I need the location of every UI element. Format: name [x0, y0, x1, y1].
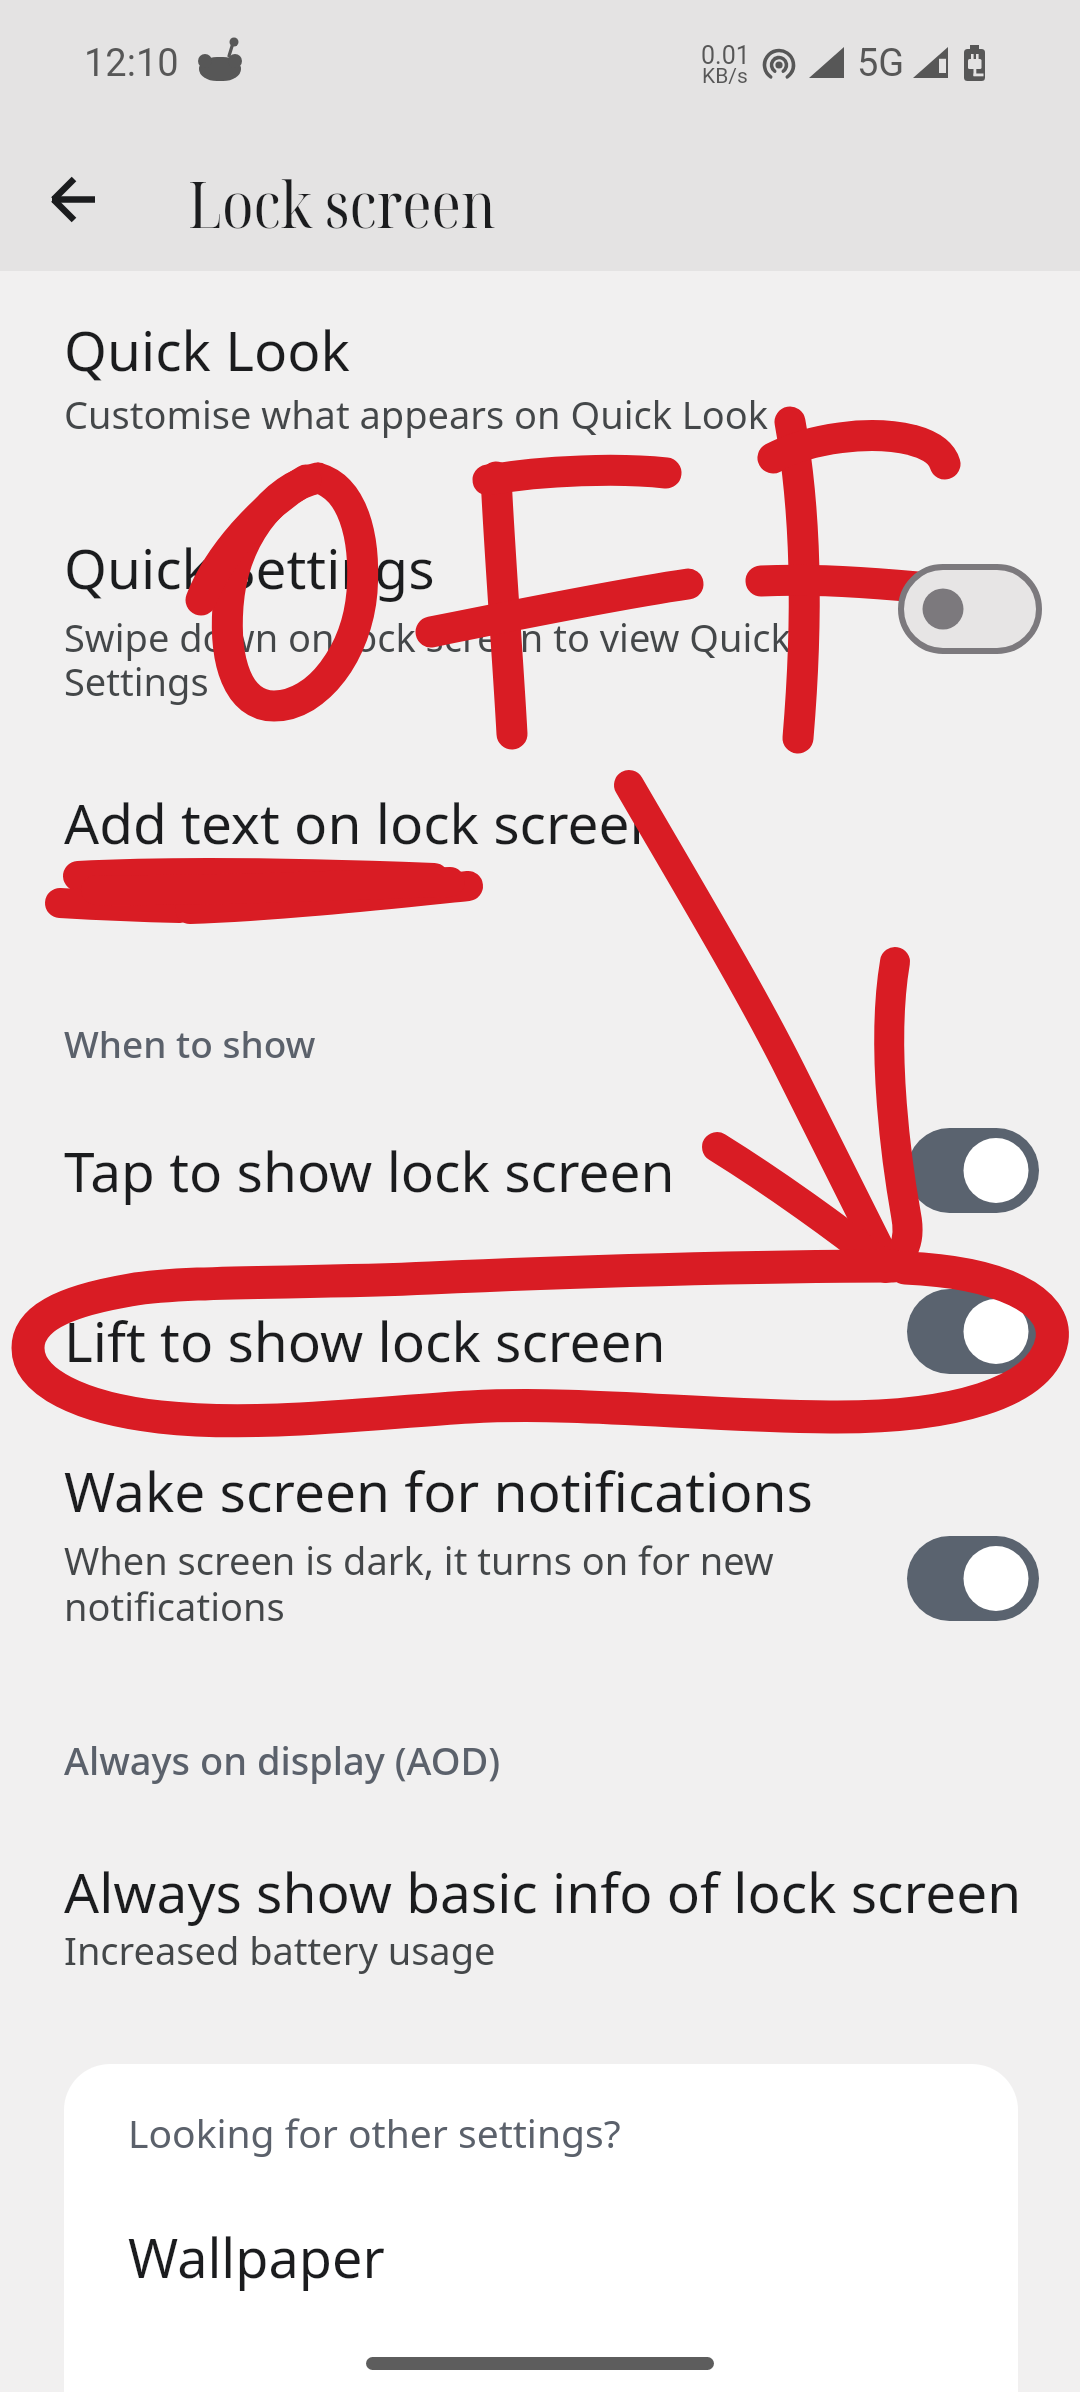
staticText: KB/s: [702, 64, 748, 89]
staticText: When screen is dark, it turns on for new…: [64, 1534, 774, 1632]
button[interactable]: Add text on lock screen: [0, 755, 1080, 875]
staticText: Swipe down on lock screen to view Quick …: [64, 611, 791, 707]
button[interactable]: Quick Settings: [0, 500, 1080, 715]
button[interactable]: Tap to show lock screen: [0, 1105, 1080, 1240]
staticText: 12:10: [84, 41, 179, 86]
button[interactable]: Toggle off: [885, 545, 1061, 675]
staticText: Tap to show lock screen: [64, 1133, 675, 1208]
staticText: Looking for other settings?: [128, 2106, 621, 2159]
staticText: Lock screen: [188, 161, 496, 247]
staticText: 0.01: [701, 41, 750, 70]
staticText: Increased battery usage: [64, 1924, 496, 1976]
staticText: When to show: [64, 1018, 316, 1068]
staticText: Lift to show lock screen: [64, 1303, 666, 1378]
button[interactable]: Wake screen for notifications: [0, 1420, 1080, 1625]
staticText: Wake screen for notifications: [64, 1453, 813, 1528]
button[interactable]: Toggle on: [885, 1106, 1061, 1236]
button[interactable]: Lift to show lock screen: [0, 1265, 1080, 1400]
button[interactable]: Looking for other settings?: [64, 2064, 1018, 2392]
staticText: Quick Look: [64, 312, 350, 387]
button[interactable]: Toggle on: [885, 1514, 1061, 1644]
staticText: Quick Settings: [64, 530, 435, 605]
staticText: Always show basic info of lock screen: [64, 1854, 1022, 1929]
staticText: 5G: [857, 41, 905, 86]
staticText: Add text on lock screen: [64, 785, 664, 860]
button[interactable]: Back: [24, 152, 120, 248]
button[interactable]: Quick Look: [0, 284, 1080, 434]
staticText: Wallpaper: [128, 2220, 385, 2294]
button[interactable]: Always show basic info of lock screen: [0, 1825, 1080, 2015]
staticText: Always on display (AOD): [64, 1734, 501, 1786]
button[interactable]: Toggle on: [885, 1267, 1061, 1397]
staticText: Customise what appears on Quick Look: [64, 388, 769, 440]
